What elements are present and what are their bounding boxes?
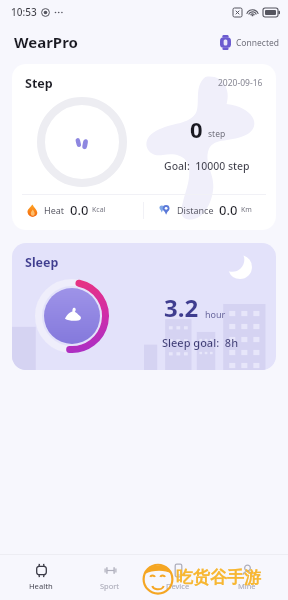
button[interactable]: Sport bbox=[82, 559, 138, 595]
staticText: 0 bbox=[190, 114, 203, 144]
staticText: Sleep bbox=[25, 254, 59, 271]
staticText: Heat bbox=[44, 204, 65, 216]
button[interactable]: Step bbox=[12, 64, 276, 230]
button[interactable]: Mine bbox=[219, 559, 275, 595]
staticText: WearPro bbox=[14, 32, 78, 52]
staticText: 0.0 bbox=[70, 201, 89, 219]
staticText: hour bbox=[205, 308, 226, 320]
staticText: Sport bbox=[100, 581, 120, 591]
staticText: Kcal bbox=[92, 205, 106, 215]
staticText: Sleep goal: 8h bbox=[162, 335, 239, 350]
staticText: Connected bbox=[236, 37, 279, 49]
staticText: Step bbox=[25, 75, 53, 92]
button[interactable]: Health bbox=[13, 559, 69, 595]
staticText: Goal: 10000 step bbox=[164, 159, 250, 173]
staticText: step bbox=[208, 128, 226, 140]
staticText: Mine bbox=[238, 581, 256, 591]
button[interactable]: Device bbox=[150, 559, 206, 595]
staticText: 0.0 bbox=[219, 201, 238, 219]
staticText: 3.2 bbox=[164, 291, 199, 324]
staticText: 2020-09-16 bbox=[218, 77, 263, 89]
staticText: Distance bbox=[177, 204, 214, 216]
staticText: 10:53 bbox=[11, 5, 37, 19]
staticText: Km bbox=[241, 205, 252, 215]
button[interactable]: Sleep bbox=[12, 243, 276, 370]
staticText: Health bbox=[29, 581, 53, 591]
staticText: Device bbox=[166, 581, 190, 591]
staticText: 吃货谷手游 bbox=[176, 567, 261, 588]
button[interactable]: Connected device bbox=[220, 35, 279, 50]
